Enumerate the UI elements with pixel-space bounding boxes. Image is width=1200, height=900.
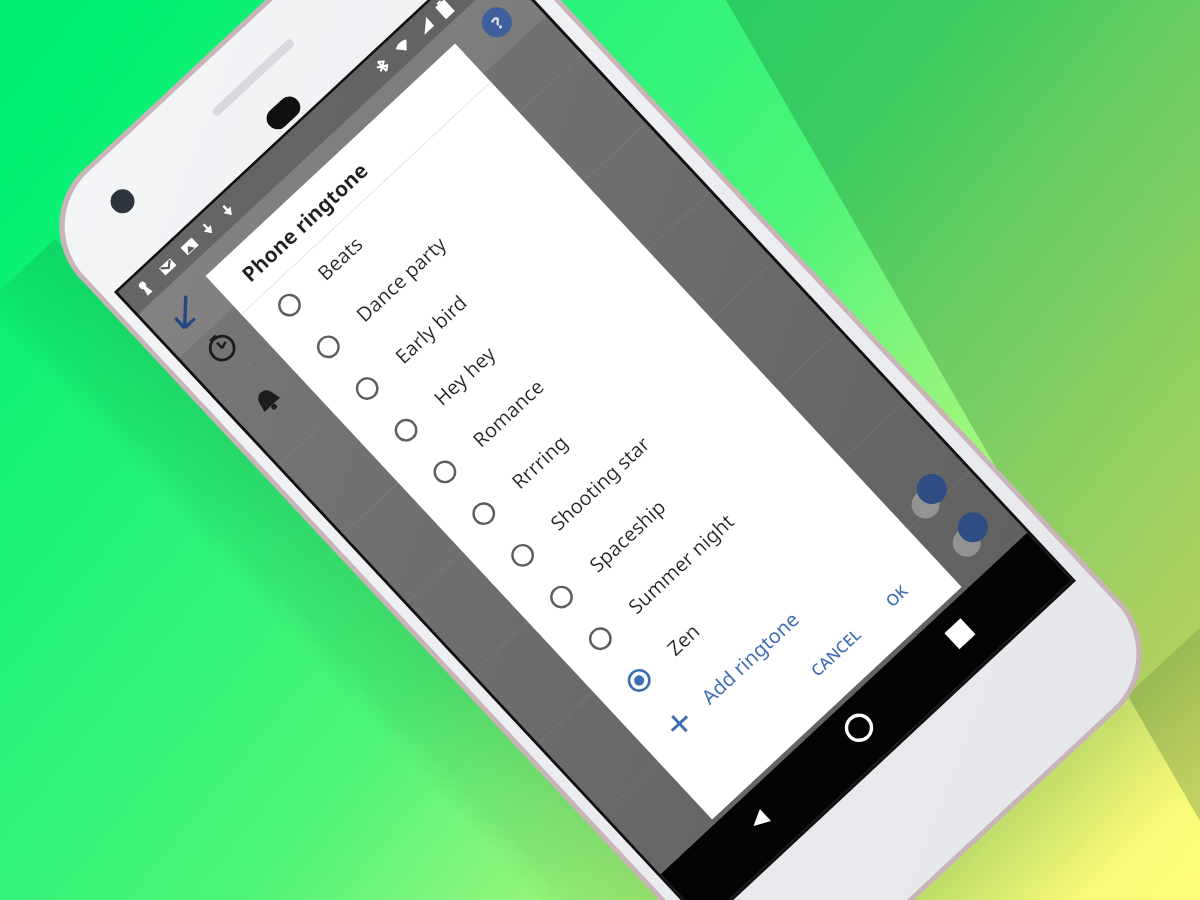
staticText: Rrrring (506, 428, 574, 494)
staticText: Early bird (389, 289, 473, 369)
staticText: CANCEL (806, 623, 866, 681)
staticText: Dance party (350, 230, 452, 328)
button[interactable]: CANCEL (796, 614, 876, 691)
button[interactable]: Summer night (551, 414, 839, 688)
staticText: Zen (661, 617, 706, 661)
button[interactable]: Rrrring (434, 289, 722, 563)
staticText: Spaceship (583, 493, 671, 578)
button[interactable]: Back (164, 292, 206, 334)
button[interactable]: Add ringtone (630, 499, 918, 773)
button[interactable]: Dance party (278, 122, 567, 396)
staticText: Phone ringtone (236, 156, 375, 288)
button[interactable]: Home (838, 707, 880, 749)
staticText: ? (486, 11, 509, 34)
button[interactable]: Hey hey (356, 205, 645, 479)
staticText: Add ringtone (695, 606, 805, 710)
button[interactable]: Zen (589, 455, 878, 730)
button[interactable]: Back (742, 804, 776, 837)
staticText: OK (881, 580, 912, 612)
button[interactable]: Recent apps (944, 618, 975, 649)
button[interactable]: OK (871, 570, 922, 621)
button[interactable]: Beats (240, 80, 528, 354)
button[interactable]: Help (476, 1, 518, 43)
staticText: Shooting star (544, 430, 656, 536)
button[interactable]: Spaceship (512, 372, 800, 646)
staticText: Beats (311, 230, 369, 286)
staticText: Romance (467, 373, 550, 453)
button[interactable]: Shooting star (473, 330, 761, 604)
button[interactable]: Romance (395, 247, 683, 521)
staticText: Summer night (622, 508, 739, 620)
button[interactable]: Early bird (317, 163, 606, 438)
staticText: Hey hey (428, 340, 501, 411)
